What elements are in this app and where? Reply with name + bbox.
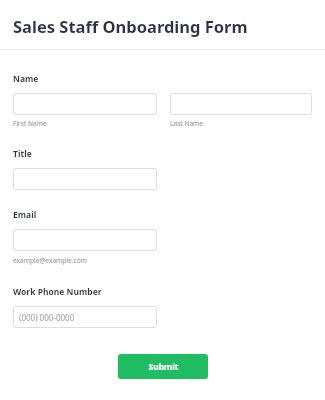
staticText: Work Phone Number xyxy=(13,286,102,298)
button[interactable] xyxy=(170,93,312,115)
staticText: Sales Staff Onboarding Form xyxy=(13,15,248,37)
staticText: First Name xyxy=(13,119,47,128)
staticText: Title xyxy=(13,148,32,160)
button[interactable] xyxy=(13,229,157,251)
staticText: Name xyxy=(13,73,39,85)
button[interactable]: Submit xyxy=(118,354,208,379)
button[interactable] xyxy=(13,168,157,190)
staticText: example@example.com xyxy=(13,256,87,265)
staticText: (000) 000-0000 xyxy=(19,312,75,323)
staticText: Email xyxy=(13,209,37,221)
button[interactable]: (000) 000-0000 xyxy=(13,306,157,328)
button[interactable] xyxy=(13,93,157,115)
staticText: Submit xyxy=(148,361,179,373)
staticText: Last Name xyxy=(170,119,204,128)
